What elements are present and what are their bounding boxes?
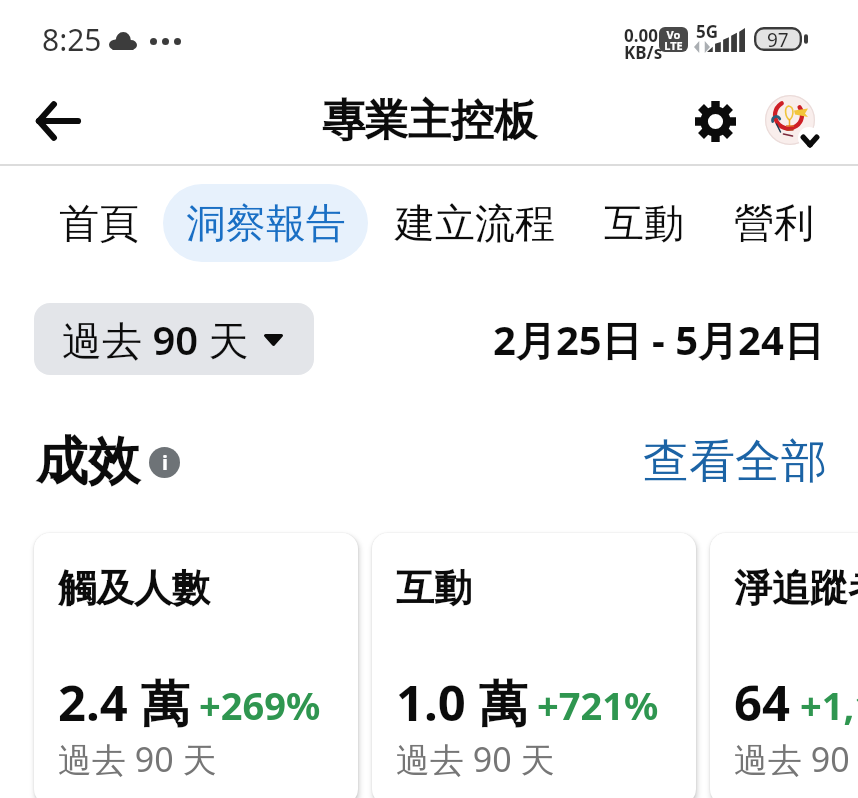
staticText: 專業主控板	[322, 94, 537, 148]
staticText: 互動	[396, 564, 472, 612]
button[interactable]: 營利	[734, 198, 814, 248]
staticText: 0.00 KB/s	[624, 24, 663, 64]
staticText: 97	[767, 27, 789, 51]
staticText: 成效	[36, 429, 140, 495]
staticText: +721%	[537, 679, 659, 731]
button[interactable]: 首頁	[59, 198, 139, 248]
button[interactable]: 查看全部	[643, 433, 827, 491]
button[interactable]: Account	[757, 87, 823, 153]
staticText: i	[162, 449, 168, 476]
staticText: 過去 90 天	[58, 736, 217, 782]
staticText: 過去 90 天	[734, 736, 858, 782]
button[interactable]: 觸及人數	[34, 533, 358, 798]
staticText: 2月25日 - 5月24日	[493, 312, 824, 367]
button[interactable]: 互動	[604, 198, 684, 248]
staticText: 觸及人數	[58, 564, 210, 612]
staticText: 2.4 萬	[58, 669, 190, 736]
staticText: 洞察報告	[186, 198, 346, 248]
button[interactable]: 淨追蹤者	[710, 533, 858, 798]
button[interactable]: Settings	[681, 87, 749, 155]
staticText: 過去 90 天	[62, 312, 249, 367]
button[interactable]: 互動	[372, 533, 696, 798]
button[interactable]: 過去 90 天	[34, 303, 314, 375]
button[interactable]: 建立流程	[395, 198, 555, 248]
button[interactable]: Info	[149, 447, 180, 478]
staticText: 淨追蹤者	[734, 564, 858, 612]
button[interactable]: 洞察報告	[163, 184, 368, 262]
staticText: Vo LTE	[664, 27, 683, 52]
staticText: +1,100%	[800, 679, 858, 731]
staticText: 8:25	[42, 19, 102, 60]
staticText: 1.0 萬	[396, 669, 528, 736]
staticText: +269%	[199, 679, 321, 731]
staticText: 5G	[696, 20, 719, 43]
staticText: 64	[734, 669, 791, 736]
button[interactable]: Back	[20, 83, 96, 159]
staticText: 過去 90 天	[396, 736, 555, 782]
